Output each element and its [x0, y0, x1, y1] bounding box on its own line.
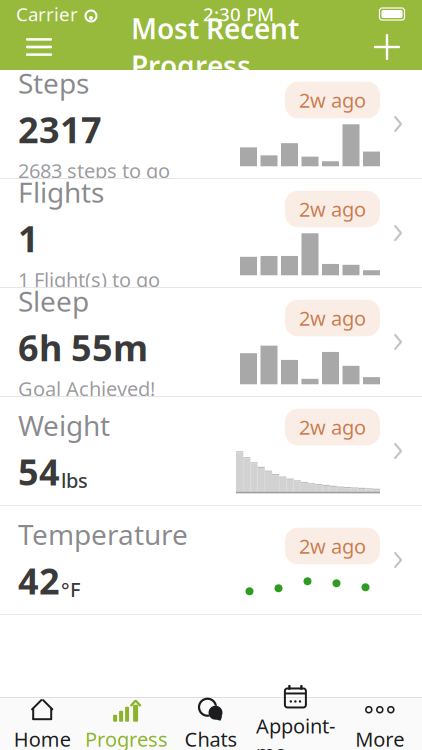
staticText: Home	[14, 726, 71, 750]
staticText: More	[355, 726, 404, 750]
staticText: °F	[61, 576, 81, 602]
button[interactable]: Home	[0, 690, 84, 750]
staticText: 6h 55m	[18, 323, 148, 371]
button[interactable]: Steps	[0, 70, 422, 179]
button[interactable]: Sleep	[0, 288, 422, 397]
button[interactable]: Flights	[0, 179, 422, 288]
staticText: 1 Flight(s) to go	[18, 266, 160, 293]
staticText: 2w ago	[299, 305, 366, 331]
staticText: 2:30 PM	[203, 2, 274, 26]
staticText: Flights	[18, 173, 104, 210]
button[interactable]: Progress	[84, 690, 169, 750]
staticText: 2683 steps to go	[18, 157, 170, 184]
staticText: 2w ago	[299, 196, 366, 222]
staticText: 42	[18, 557, 60, 604]
button[interactable]: Chats	[169, 690, 253, 750]
button[interactable]: Add	[370, 26, 404, 68]
staticText: 2w ago	[299, 87, 366, 113]
staticText: lbs	[61, 467, 88, 493]
staticText: Appointme…	[256, 712, 335, 750]
staticText: 2w ago	[299, 414, 366, 440]
staticText: Progress	[85, 726, 168, 750]
button[interactable]: More	[338, 690, 422, 750]
staticText: Weight	[18, 406, 110, 444]
staticText: Most Recent Progress	[131, 10, 299, 84]
staticText: 1	[18, 214, 39, 262]
staticText: Goal Achieved!	[18, 375, 155, 402]
staticText: 2317	[18, 105, 102, 153]
staticText: Temperature	[18, 515, 188, 553]
staticText: 2w ago	[299, 533, 366, 559]
button[interactable]: Weight	[0, 397, 422, 506]
staticText: Carrier	[16, 2, 78, 26]
staticText: Steps	[18, 64, 89, 101]
button[interactable]: Menu	[18, 26, 60, 68]
button[interactable]: Temperature	[0, 506, 422, 615]
button[interactable]: Appointme…	[253, 676, 338, 750]
staticText: Sleep	[18, 282, 89, 319]
staticText: Chats	[184, 726, 237, 750]
staticText: 54	[18, 448, 60, 495]
